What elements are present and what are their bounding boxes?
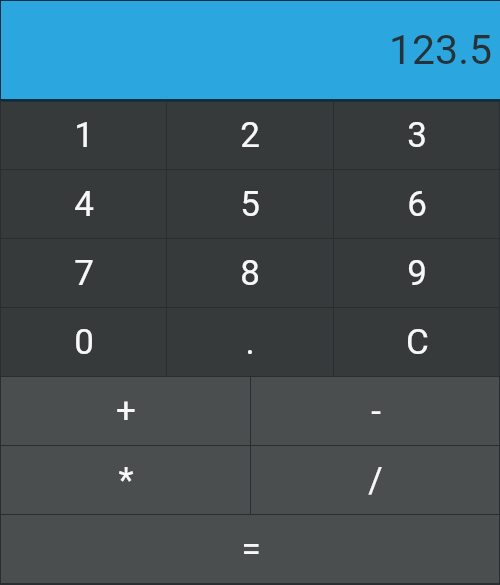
staticText: 1 xyxy=(74,115,94,156)
button[interactable]: . xyxy=(166,307,333,376)
button[interactable]: 6 xyxy=(333,169,500,238)
staticText: . xyxy=(245,322,255,363)
staticText: + xyxy=(116,391,136,432)
button[interactable]: + xyxy=(0,376,250,445)
staticText: 4 xyxy=(74,184,94,225)
staticText: 2 xyxy=(240,115,260,156)
button[interactable]: 8 xyxy=(166,238,333,307)
button[interactable]: 2 xyxy=(166,101,333,169)
button[interactable]: / xyxy=(250,445,500,514)
button[interactable]: 1 xyxy=(0,101,166,169)
staticText: 7 xyxy=(74,253,94,294)
button[interactable]: 5 xyxy=(166,169,333,238)
staticText: C xyxy=(406,322,429,363)
staticText: * xyxy=(118,460,134,501)
staticText: - xyxy=(371,391,381,432)
button[interactable]: 3 xyxy=(333,101,500,169)
button[interactable]: 0 xyxy=(0,307,166,376)
staticText: 5 xyxy=(240,184,260,225)
button[interactable]: 9 xyxy=(333,238,500,307)
staticText: = xyxy=(241,529,261,570)
staticText: 8 xyxy=(240,253,260,294)
button[interactable]: - xyxy=(250,376,500,445)
button[interactable]: 7 xyxy=(0,238,166,307)
staticText: 0 xyxy=(74,322,94,363)
staticText: / xyxy=(368,460,383,501)
button[interactable]: 4 xyxy=(0,169,166,238)
staticText: 9 xyxy=(407,253,427,294)
button[interactable]: * xyxy=(0,445,250,514)
button[interactable]: = xyxy=(0,514,500,583)
staticText: 6 xyxy=(407,184,427,225)
button[interactable]: C xyxy=(333,307,500,376)
staticText: 123.5 xyxy=(389,26,492,74)
button[interactable]: Result display xyxy=(0,0,500,101)
staticText: 3 xyxy=(407,115,427,156)
